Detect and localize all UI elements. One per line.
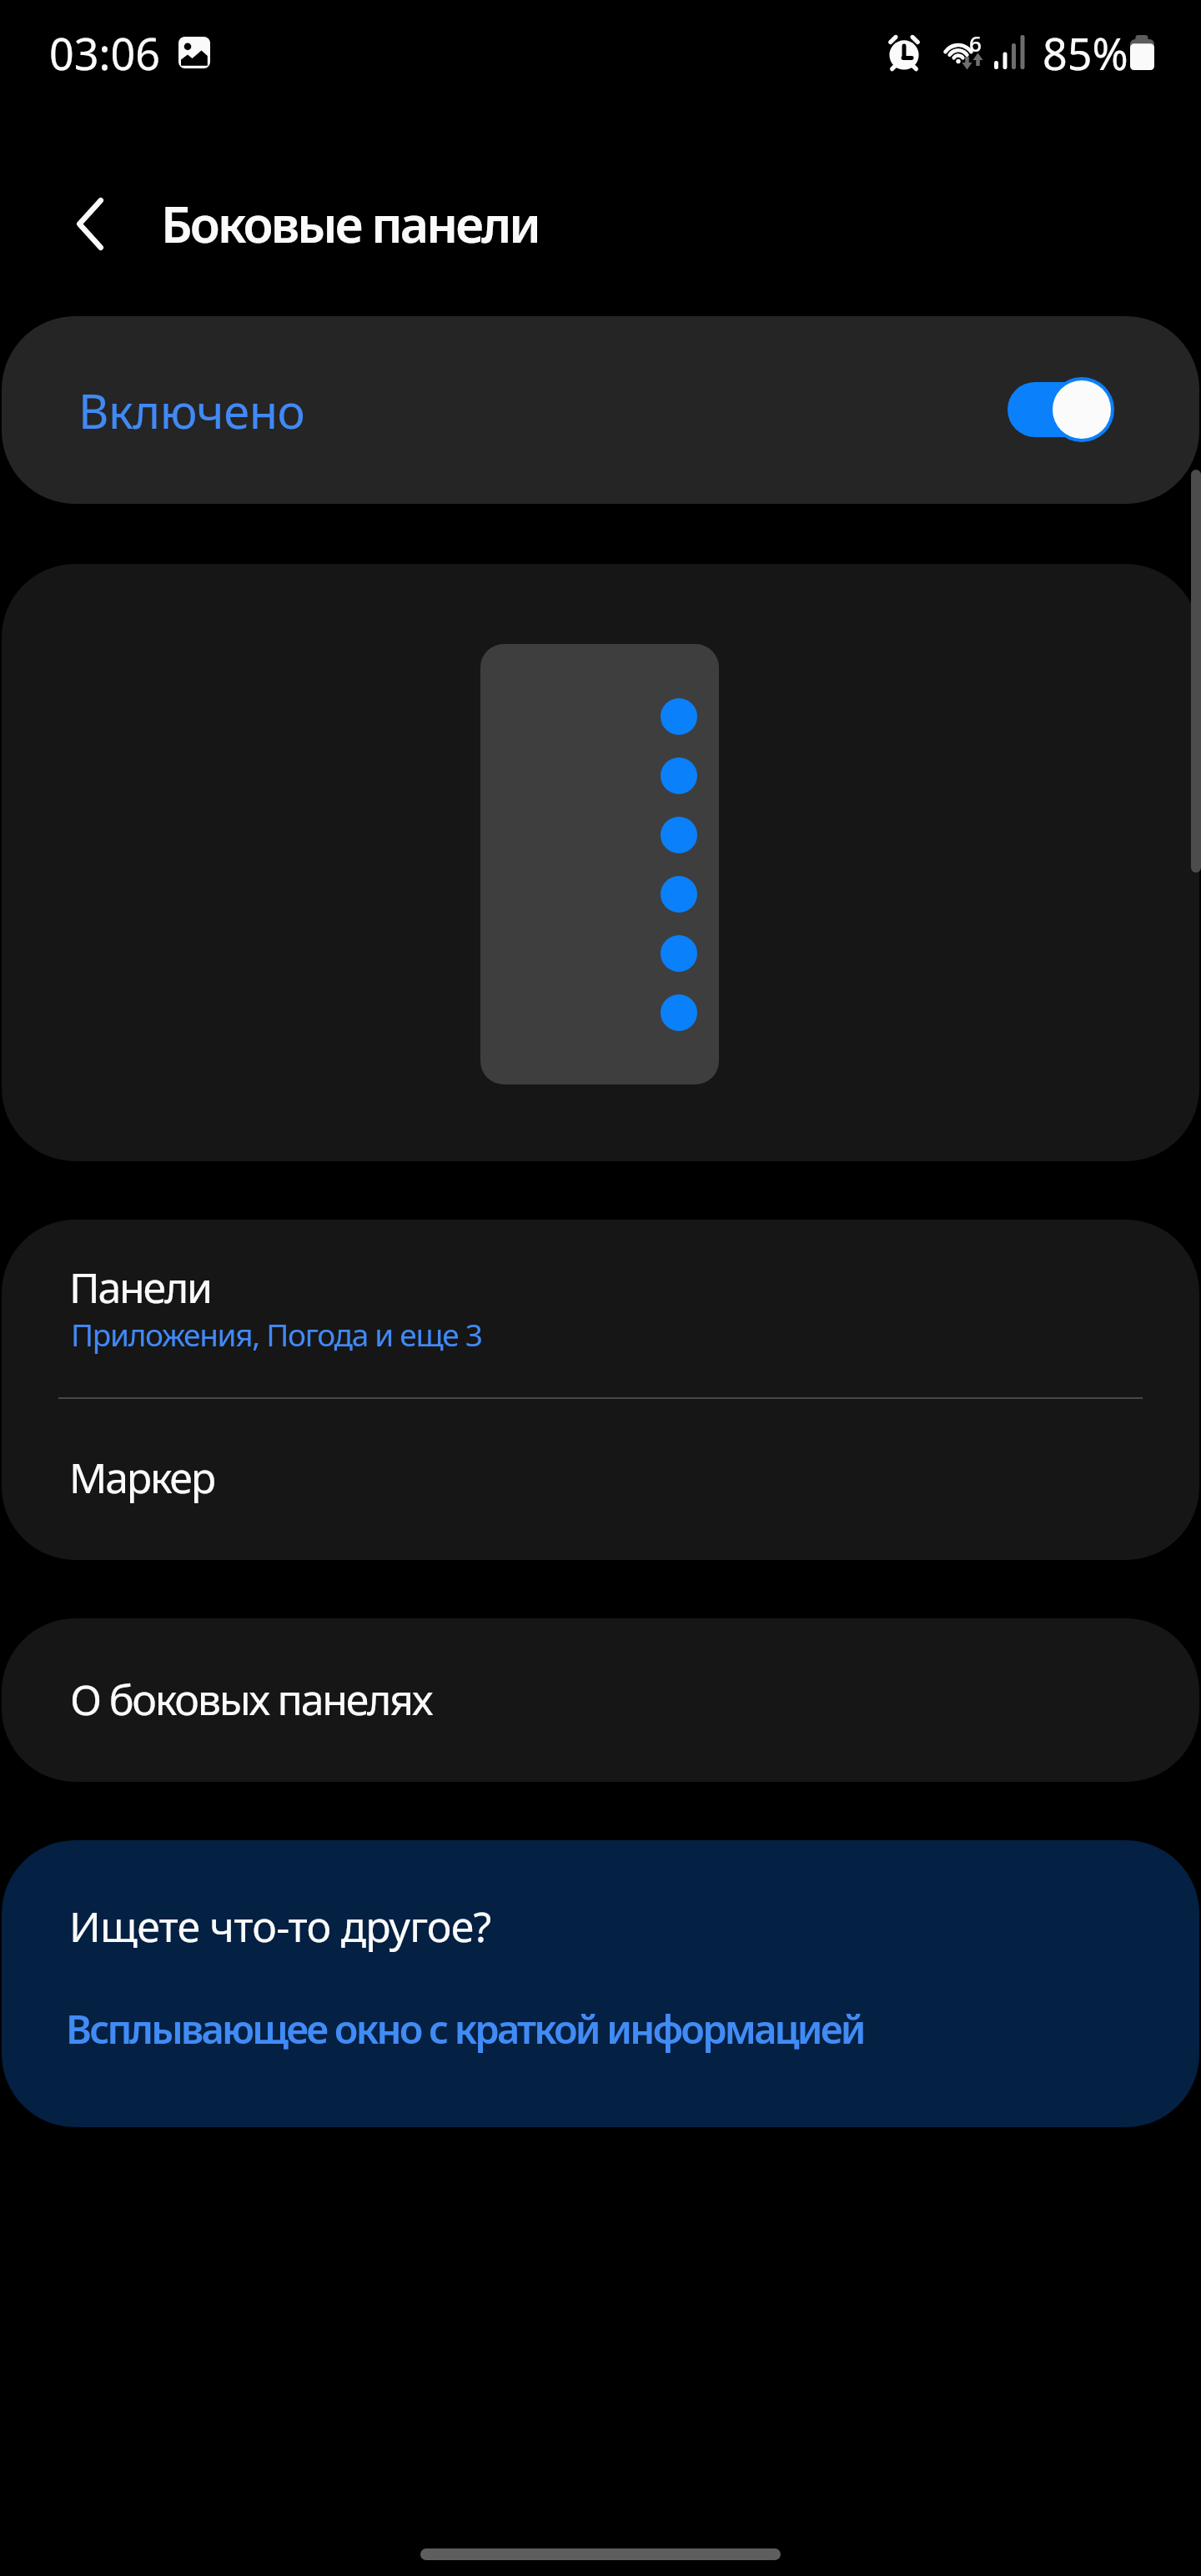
button[interactable]: Маркер (2, 1399, 1199, 1560)
staticText: Маркер (69, 1449, 214, 1506)
button[interactable]: Ищете что-то другое? (2, 1840, 1199, 2127)
button[interactable]: Назад (32, 165, 148, 282)
staticText: Ищете что-то другое? (69, 1898, 491, 1955)
staticText: 85% (1043, 23, 1128, 83)
button[interactable]: Включено (2, 316, 1199, 504)
staticText: О боковых панелях (70, 1671, 432, 1728)
staticText: Панели (69, 1259, 211, 1316)
staticText: 03:06 (49, 23, 160, 83)
button[interactable]: О боковых панелях (2, 1618, 1199, 1782)
button[interactable]: Панели (2, 1220, 1199, 1397)
staticText: Включено (78, 379, 305, 442)
staticText: Боковые панели (161, 190, 540, 257)
staticText: Всплывающее окно с краткой информацией (66, 2002, 864, 2055)
staticText: 6 (969, 28, 982, 58)
button[interactable]: Включено (1008, 375, 1113, 445)
staticText: Приложения, Погода и еще 3 (71, 1313, 482, 1355)
